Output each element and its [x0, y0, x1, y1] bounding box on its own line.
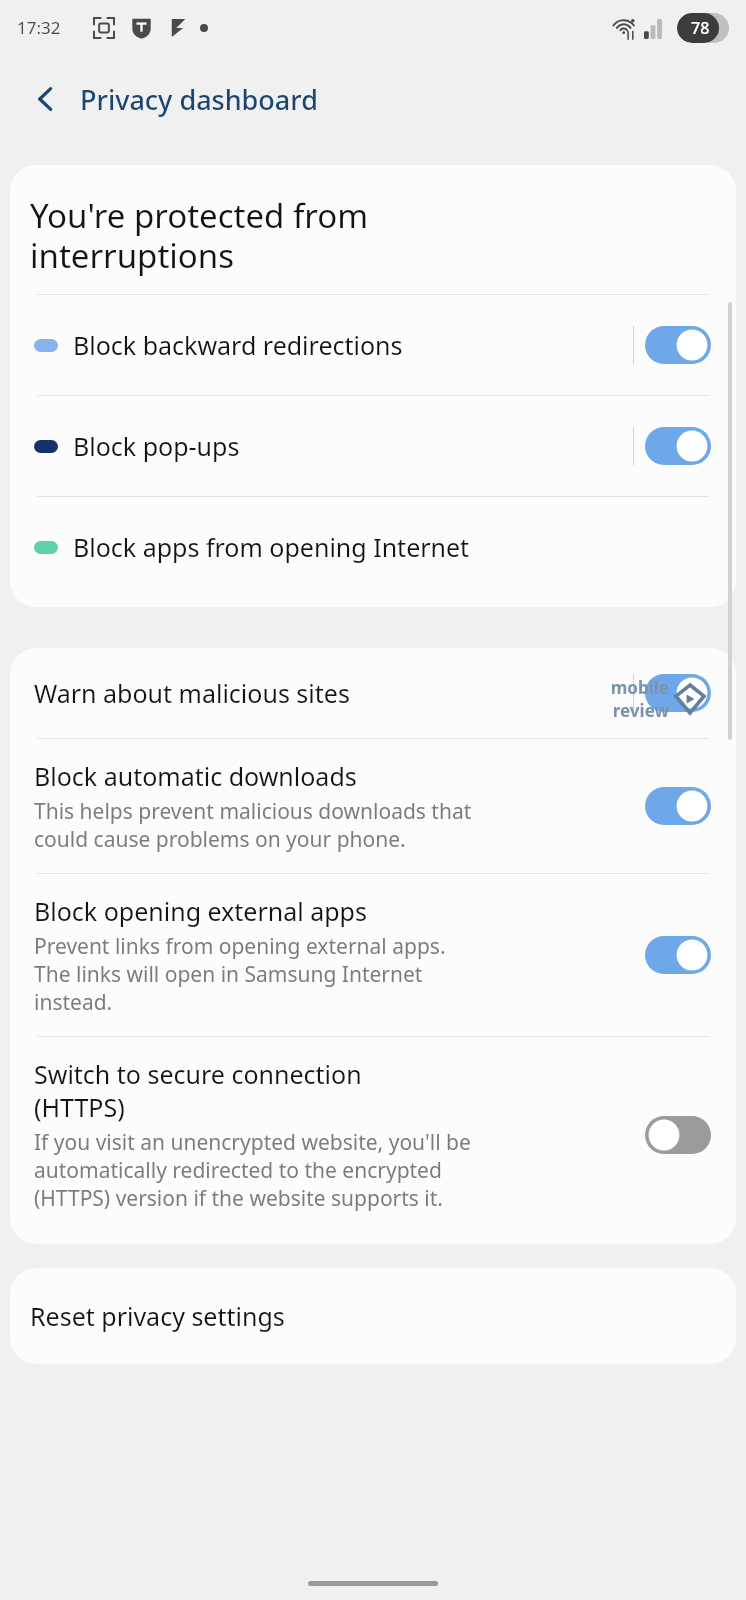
staticText: If you visit an unencrypted website, you… [34, 1128, 471, 1212]
button[interactable]: Switch to secure connection (HTTPS) [10, 1037, 736, 1232]
staticText: You're protected from interruptions [30, 193, 369, 278]
button[interactable]: Block opening external apps [10, 874, 736, 1036]
button[interactable]: On [645, 674, 711, 712]
staticText: Block opening external apps [34, 894, 367, 928]
staticText: Block automatic downloads [34, 759, 357, 793]
button[interactable]: On [645, 427, 711, 465]
staticText: 17:32 [17, 16, 61, 39]
staticText: This helps prevent malicious downloads t… [34, 797, 472, 853]
button[interactable]: Block automatic downloads [10, 739, 736, 873]
button[interactable]: Block apps from opening Internet [10, 497, 736, 597]
staticText: mobile [610, 676, 669, 699]
staticText: Reset privacy settings [30, 1299, 285, 1333]
button[interactable]: Back [22, 75, 70, 123]
button[interactable]: Warn about malicious sites [10, 648, 736, 738]
staticText: Privacy dashboard [80, 81, 318, 118]
staticText: Block apps from opening Internet [73, 530, 711, 564]
button[interactable]: On [645, 936, 711, 974]
button[interactable]: Block pop-ups [10, 396, 736, 496]
staticText: Warn about malicious sites [34, 676, 350, 710]
staticText: Prevent links from opening external apps… [34, 932, 446, 1016]
button[interactable]: Reset privacy settings [10, 1268, 736, 1364]
button[interactable]: On [645, 326, 711, 364]
button[interactable]: Block backward redirections [10, 295, 736, 395]
staticText: Block backward redirections [73, 328, 633, 362]
staticText: Block pop-ups [73, 429, 633, 463]
button[interactable]: On [645, 787, 711, 825]
button[interactable]: Off [645, 1116, 711, 1154]
staticText: review [612, 699, 669, 722]
staticText: 78 [691, 17, 710, 39]
staticText: Switch to secure connection (HTTPS) [34, 1057, 362, 1124]
